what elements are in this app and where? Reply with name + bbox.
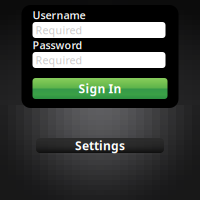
staticText: Sign In [78,80,121,96]
button[interactable]: Sign In [32,78,167,99]
staticText: Username [32,8,85,22]
button[interactable]: Settings [36,138,164,153]
staticText: Settings [75,137,125,153]
staticText: Password [32,38,82,52]
staticText: Required [35,53,82,67]
staticText: Required [35,23,82,37]
